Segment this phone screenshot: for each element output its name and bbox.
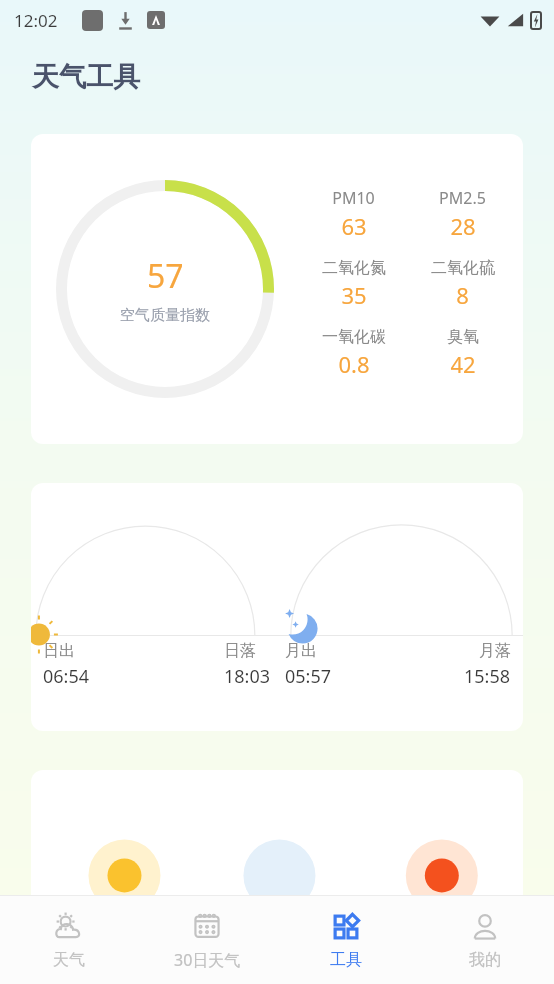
staticText: 空气质量指数 <box>120 306 210 325</box>
staticText: 天气工具 <box>32 60 140 94</box>
staticText: 二氧化硫 <box>431 258 495 278</box>
staticText: 月落 <box>479 641 511 661</box>
staticText: 06:54 <box>43 664 90 689</box>
button[interactable]: 我的 <box>415 896 554 984</box>
button[interactable]: 天气 <box>0 896 138 984</box>
staticText: 二氧化氮 <box>322 258 386 278</box>
staticText: 28 <box>450 211 476 241</box>
staticText: 工具 <box>330 950 362 970</box>
staticText: 0.8 <box>338 349 370 379</box>
staticText: PM2.5 <box>439 187 486 209</box>
staticText: 一氧化碳 <box>322 327 386 347</box>
staticText: 12:02 <box>14 9 58 32</box>
staticText: 天气 <box>53 950 85 970</box>
staticText: 05:57 <box>285 664 332 689</box>
staticText: 57 <box>147 254 184 298</box>
button[interactable] <box>31 770 523 940</box>
staticText: 18:03 <box>224 664 271 689</box>
staticText: 日出 <box>43 641 75 661</box>
staticText: 42 <box>450 349 476 379</box>
staticText: 月出 <box>285 641 317 661</box>
button[interactable]: 57 <box>31 134 523 444</box>
staticText: 15:58 <box>464 664 511 689</box>
staticText: 63 <box>341 211 367 241</box>
staticText: 日落 <box>224 641 256 661</box>
button[interactable]: 工具 <box>276 896 415 984</box>
staticText: 30日天气 <box>174 949 241 971</box>
staticText: 臭氧 <box>447 327 479 347</box>
staticText: 我的 <box>469 950 501 970</box>
button[interactable]: 日出 <box>31 483 523 731</box>
button[interactable]: 30日天气 <box>138 896 276 984</box>
staticText: PM10 <box>332 187 375 209</box>
staticText: 35 <box>341 280 367 310</box>
staticText: 8 <box>456 280 469 310</box>
